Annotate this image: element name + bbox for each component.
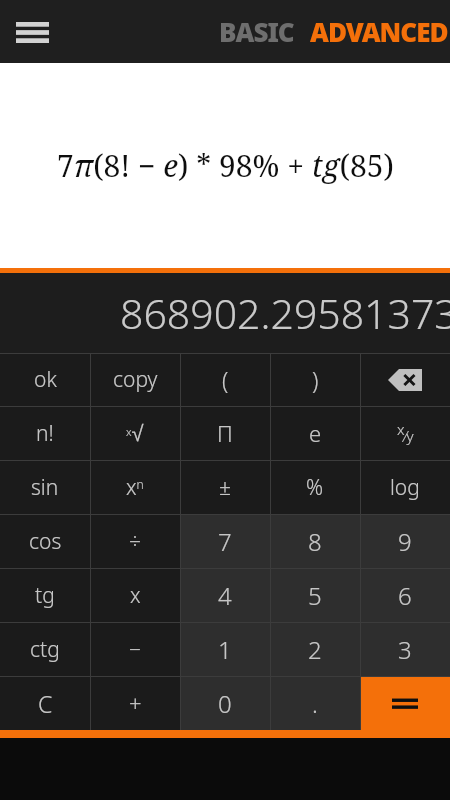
- button[interactable]: cos: [0, 514, 90, 568]
- staticText: −: [129, 635, 141, 664]
- staticText: Π: [217, 418, 233, 448]
- staticText: sin: [31, 473, 59, 502]
- staticText: 5: [308, 579, 322, 612]
- staticText: 9: [398, 525, 412, 558]
- staticText: C: [38, 688, 53, 719]
- staticText: 4: [218, 579, 232, 612]
- button[interactable]: open parenthesis: [180, 353, 270, 406]
- staticText: 6: [398, 579, 412, 612]
- button[interactable]: multiply: [90, 568, 180, 622]
- button[interactable]: Clear: [0, 676, 90, 730]
- button[interactable]: 1: [180, 622, 270, 676]
- staticText: ok: [34, 365, 57, 394]
- staticText: e: [309, 418, 322, 448]
- staticText: 868902.295813735: [120, 285, 450, 341]
- button[interactable]: ADVANCED: [302, 6, 450, 57]
- staticText: 8: [308, 525, 322, 558]
- button[interactable]: 7: [180, 514, 270, 568]
- button[interactable]: nth root: [90, 406, 180, 460]
- button[interactable]: plus minus: [180, 460, 270, 514]
- staticText: copy: [113, 365, 158, 394]
- staticText: ±: [219, 473, 231, 502]
- button[interactable]: BASIC: [211, 6, 302, 57]
- button[interactable]: decimal point: [270, 676, 360, 730]
- button[interactable]: log: [360, 460, 450, 514]
- staticText: 0: [218, 687, 232, 720]
- staticText: ADVANCED: [310, 14, 448, 49]
- button[interactable]: e: [270, 406, 360, 460]
- staticText: 7: [218, 525, 232, 558]
- staticText: 3: [398, 633, 412, 666]
- staticText: (: [222, 364, 229, 395]
- button[interactable]: minus: [90, 622, 180, 676]
- button[interactable]: 6: [360, 568, 450, 622]
- staticText: n!: [36, 419, 54, 448]
- button[interactable]: divide: [90, 514, 180, 568]
- staticText: 1: [218, 633, 232, 666]
- staticText: BASIC: [219, 14, 294, 49]
- button[interactable]: equals: [360, 676, 450, 730]
- button[interactable]: x to the power n: [90, 460, 180, 514]
- button[interactable]: percent: [270, 460, 360, 514]
- staticText: log: [390, 473, 420, 502]
- button[interactable]: 4: [180, 568, 270, 622]
- button[interactable]: pi: [180, 406, 270, 460]
- button[interactable]: 2: [270, 622, 360, 676]
- button[interactable]: tangent: [0, 568, 90, 622]
- button[interactable]: cotangent: [0, 622, 90, 676]
- staticText: 2: [308, 633, 322, 666]
- staticText: x√: [126, 421, 144, 446]
- staticText: ctg: [30, 635, 60, 664]
- staticText: ): [312, 364, 319, 395]
- staticText: ÷: [129, 527, 141, 556]
- button[interactable]: ok: [0, 353, 90, 406]
- staticText: %: [306, 473, 324, 502]
- staticText: cos: [29, 527, 62, 556]
- staticText: tg: [35, 581, 55, 610]
- staticText: xn: [126, 473, 144, 502]
- staticText: +: [129, 688, 142, 718]
- staticText: 7π(8! − e) * 98% + tg(85): [57, 145, 394, 186]
- button[interactable]: 3: [360, 622, 450, 676]
- button[interactable]: factorial: [0, 406, 90, 460]
- button[interactable]: copy: [90, 353, 180, 406]
- staticText: x⁄y: [397, 419, 414, 447]
- button[interactable]: sin: [0, 460, 90, 514]
- button[interactable]: plus: [90, 676, 180, 730]
- staticText: .: [312, 687, 318, 720]
- button[interactable]: x divided by y: [360, 406, 450, 460]
- button[interactable]: 5: [270, 568, 360, 622]
- button[interactable]: 0: [180, 676, 270, 730]
- staticText: x: [130, 581, 141, 610]
- button[interactable]: Backspace: [360, 353, 450, 406]
- button[interactable]: close parenthesis: [270, 353, 360, 406]
- button[interactable]: 9: [360, 514, 450, 568]
- button[interactable]: 8: [270, 514, 360, 568]
- button[interactable]: Menu: [6, 6, 58, 58]
